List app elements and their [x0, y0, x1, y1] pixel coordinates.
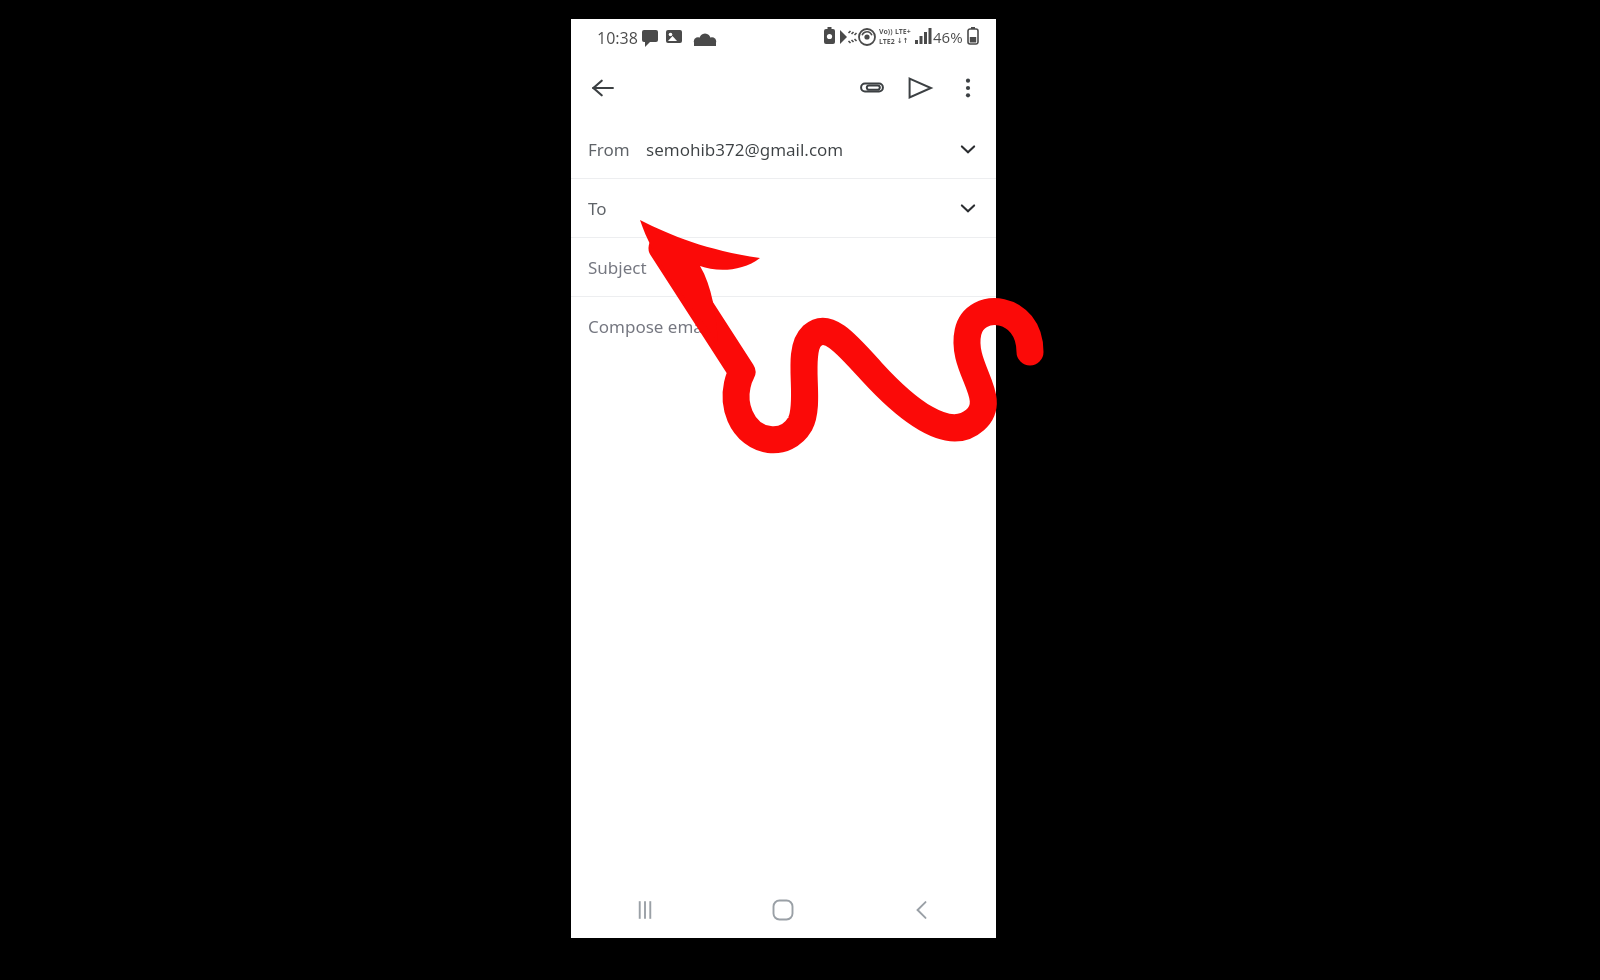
button[interactable]: From — [571, 120, 996, 178]
button[interactable]: More options — [944, 64, 992, 112]
staticText: ↓↑ — [897, 37, 909, 45]
button[interactable]: Back — [894, 882, 950, 938]
button[interactable]: Compose email — [571, 297, 996, 355]
staticText: Subject — [588, 256, 647, 279]
staticText: semohib372@gmail.com — [646, 138, 844, 161]
button[interactable]: Expand sender options — [948, 129, 988, 169]
button[interactable]: Recent apps — [617, 882, 673, 938]
staticText: 10:38 — [597, 27, 638, 49]
button[interactable]: Send — [896, 64, 944, 112]
staticText: Compose email — [588, 315, 712, 338]
staticText: 46% — [933, 27, 963, 47]
button[interactable]: To — [571, 179, 996, 237]
staticText: LTE+ — [895, 27, 911, 37]
button[interactable]: Subject — [571, 238, 996, 296]
staticText: LTE2 — [879, 37, 895, 47]
button[interactable]: Home — [755, 882, 811, 938]
staticText: Vo)) — [879, 27, 893, 37]
staticText: From — [588, 138, 630, 161]
staticText: To — [588, 197, 607, 220]
button[interactable]: Expand recipients — [948, 188, 988, 228]
button[interactable]: Back — [579, 64, 627, 112]
button[interactable]: Attach file — [848, 64, 896, 112]
